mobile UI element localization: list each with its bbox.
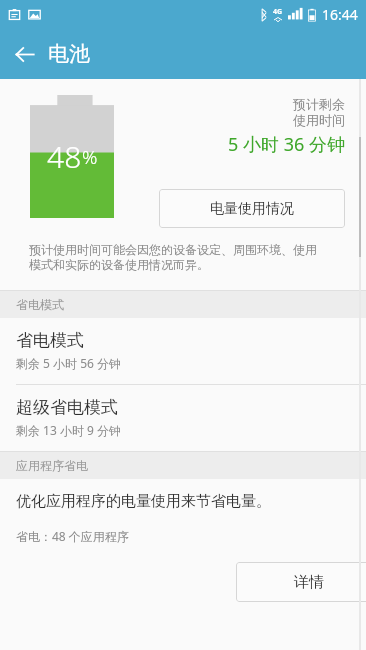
staticText: 优化应用程序的电量使用来节省电量。 (16, 492, 271, 511)
staticText: 4G (273, 7, 283, 17)
staticText: 使用时间 (293, 112, 345, 128)
staticText: 模式和实际的设备使用情况而异。 (29, 257, 209, 272)
button[interactable]: Back (0, 30, 48, 78)
staticText: 省电模式 (16, 330, 84, 351)
staticText: 电池 (48, 41, 90, 67)
button[interactable]: 省电模式 (0, 318, 366, 384)
button[interactable]: 电量使用情况 (159, 189, 345, 228)
staticText: 详情 (294, 573, 324, 592)
button[interactable]: 超级省电模式 (0, 385, 366, 451)
staticText: 预计剩余 (293, 96, 345, 112)
staticText: 预计使用时间可能会因您的设备设定、周围环境、使用 (29, 242, 317, 257)
staticText: 48 (47, 136, 82, 177)
staticText: % (82, 144, 98, 170)
staticText: 5 小时 36 分钟 (228, 132, 345, 157)
staticText: 省电模式 (16, 297, 64, 312)
staticText: 剩余 5 小时 56 分钟 (16, 355, 122, 371)
staticText: 应用程序省电 (16, 458, 88, 473)
staticText: 电量使用情况 (210, 200, 294, 218)
staticText: 剩余 13 小时 9 分钟 (16, 422, 122, 438)
staticText: 超级省电模式 (16, 397, 118, 418)
staticText: 16:44 (322, 5, 358, 24)
staticText: 省电：48 个应用程序 (16, 528, 129, 544)
button[interactable]: 详情 (236, 562, 366, 602)
